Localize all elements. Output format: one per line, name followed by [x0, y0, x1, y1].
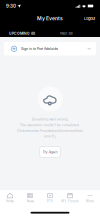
button[interactable]: Logout	[79, 13, 100, 24]
staticText: Something went wrong.	[31, 117, 68, 121]
staticText: Logout	[84, 16, 95, 21]
staticText: News	[26, 200, 33, 203]
staticText: AFL Fixture	[61, 200, 79, 203]
staticText: Sign in to Port Adelaide	[21, 47, 58, 51]
button[interactable]: AFL Fixture	[60, 192, 80, 204]
staticText: Home	[6, 200, 14, 203]
button[interactable]: Home	[0, 192, 20, 204]
button[interactable]: Sign in to Port Adelaide	[4, 42, 96, 55]
button[interactable]: UPCOMING (0)	[0, 25, 44, 37]
button[interactable]: PTV	[40, 192, 60, 204]
staticText: Try Again	[42, 150, 57, 154]
staticText: UPCOMING (0)	[9, 31, 35, 35]
button[interactable]: More	[80, 192, 100, 204]
button[interactable]: News	[20, 192, 40, 204]
button[interactable]: PAST (0)	[44, 25, 88, 37]
button[interactable]: Try Again	[40, 146, 60, 157]
staticText: (Ticketmaster.FoundationConnectionError	[17, 129, 83, 133]
staticText: The operation couldn't be completed.	[20, 123, 80, 127]
staticText: PTV	[47, 200, 53, 203]
staticText: More	[86, 200, 94, 203]
staticText: error 0.)	[44, 135, 56, 138]
staticText: My Events	[37, 15, 63, 21]
staticText: PAST (0)	[59, 31, 72, 35]
staticText: 9:30	[6, 3, 16, 9]
